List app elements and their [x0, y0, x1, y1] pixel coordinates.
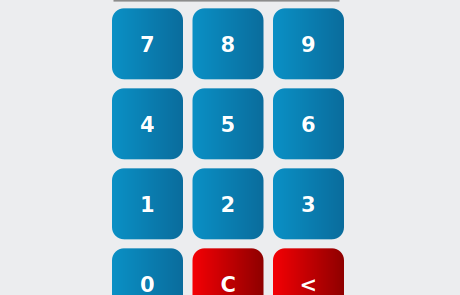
button[interactable]: Backspace — [273, 248, 344, 295]
button[interactable]: 2 — [192, 168, 263, 239]
staticText: 2 — [220, 192, 235, 217]
staticText: 4 — [140, 112, 155, 137]
staticText: 6 — [301, 112, 316, 137]
button[interactable]: 4 — [112, 88, 183, 159]
button[interactable]: Clear — [192, 248, 263, 295]
button[interactable]: 1 — [112, 168, 183, 239]
staticText: 7 — [140, 32, 155, 57]
staticText: 8 — [220, 32, 235, 57]
staticText: < — [299, 272, 317, 295]
staticText: 5 — [220, 112, 235, 137]
button[interactable]: 0 — [112, 248, 183, 295]
button[interactable]: 8 — [192, 8, 263, 79]
staticText: 0 — [140, 272, 155, 295]
staticText: C — [220, 272, 235, 295]
button[interactable]: 7 — [112, 8, 183, 79]
button[interactable]: 9 — [273, 8, 344, 79]
button[interactable]: 6 — [273, 88, 344, 159]
staticText: 9 — [301, 32, 316, 57]
button[interactable]: 5 — [192, 88, 263, 159]
button[interactable]: 3 — [273, 168, 344, 239]
staticText: 3 — [301, 192, 316, 217]
staticText: 1 — [140, 192, 155, 217]
